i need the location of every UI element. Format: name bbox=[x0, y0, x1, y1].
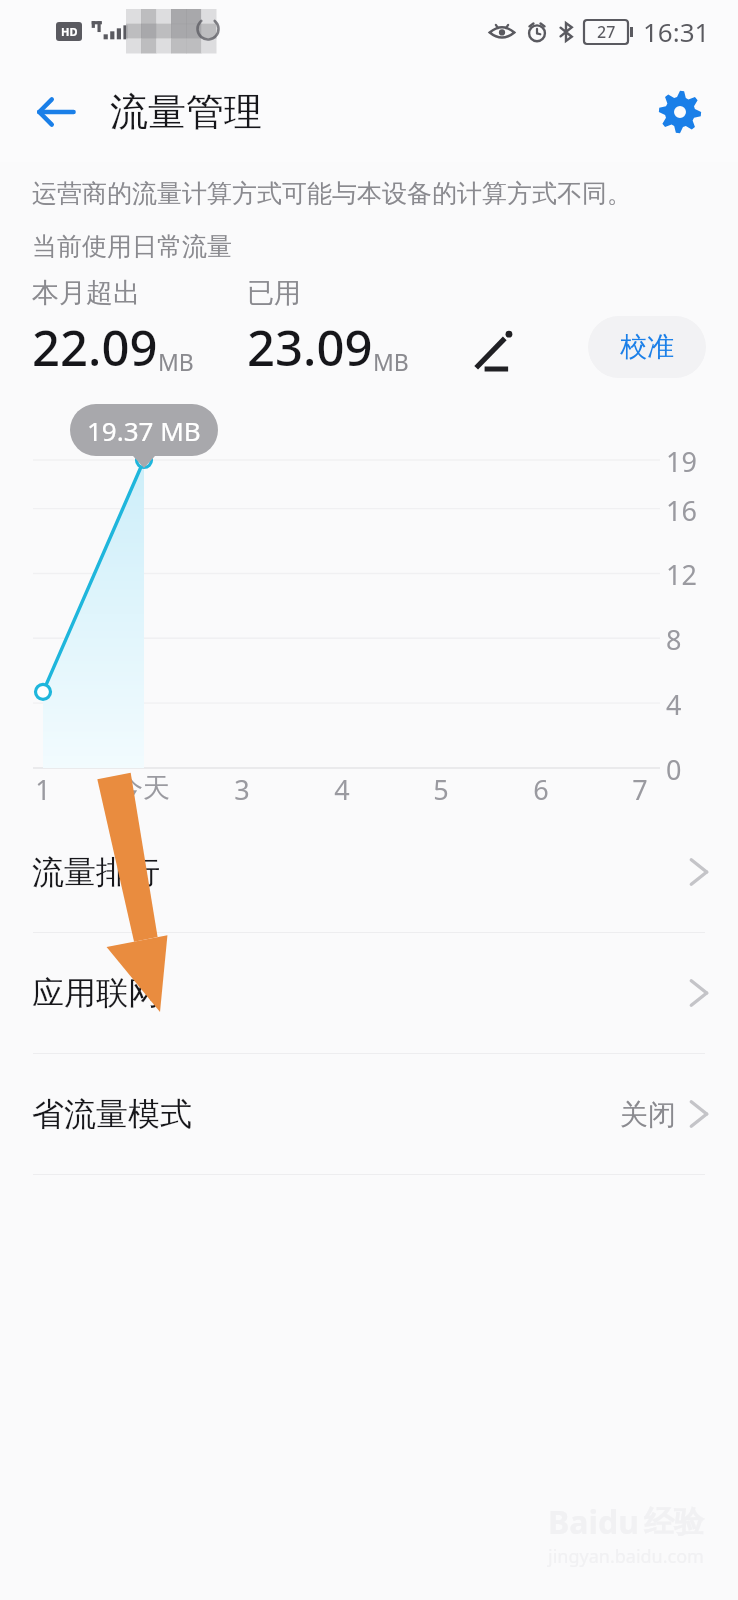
staticText: 流量管理 bbox=[110, 88, 262, 136]
staticText: 校准 bbox=[620, 330, 674, 364]
staticText: 16 bbox=[666, 492, 726, 529]
staticText: 经验 bbox=[644, 1503, 704, 1541]
button[interactable]: 设置 bbox=[644, 76, 716, 148]
staticText: 19 bbox=[666, 443, 726, 480]
staticText: jingyan.baidu.com bbox=[548, 1544, 704, 1569]
staticText: 8 bbox=[666, 621, 726, 658]
staticText: 关闭 bbox=[620, 1097, 676, 1132]
staticText: 应用联网 bbox=[32, 973, 160, 1013]
staticText: 19.37 MB bbox=[87, 413, 201, 448]
staticText: 23.09 bbox=[247, 314, 373, 381]
button[interactable]: 校准 bbox=[588, 316, 706, 378]
staticText: MB bbox=[373, 346, 409, 377]
staticText: 7 bbox=[600, 771, 680, 808]
button[interactable]: 编辑 bbox=[462, 320, 524, 382]
staticText: 运营商的流量计算方式可能与本设备的计算方式不同。 bbox=[32, 178, 632, 209]
staticText: 省流量模式 bbox=[32, 1094, 192, 1134]
staticText: 5 bbox=[401, 771, 481, 808]
staticText: 今天 bbox=[103, 771, 183, 805]
staticText: 当前使用日常流量 bbox=[32, 231, 232, 262]
staticText: 6 bbox=[501, 771, 581, 808]
staticText: 3 bbox=[202, 771, 282, 808]
staticText: 本月超出 bbox=[32, 276, 140, 310]
button[interactable]: 返回 bbox=[20, 76, 92, 148]
staticText: 流量排行 bbox=[32, 852, 160, 892]
staticText: 22.09 bbox=[32, 314, 158, 381]
staticText: 已用 bbox=[247, 276, 301, 310]
staticText: 4 bbox=[666, 686, 726, 723]
staticText: 4 bbox=[302, 771, 382, 808]
staticText: 16:31 bbox=[643, 14, 710, 49]
button[interactable]: 流量排行 bbox=[0, 812, 738, 932]
staticText: MB bbox=[158, 346, 194, 377]
button[interactable]: 省流量模式 bbox=[0, 1054, 738, 1174]
staticText: 12 bbox=[666, 556, 726, 593]
staticText: 1 bbox=[3, 771, 83, 808]
staticText: HD bbox=[61, 24, 78, 39]
staticText: Baidu bbox=[548, 1500, 640, 1544]
button[interactable]: 应用联网 bbox=[0, 933, 738, 1053]
staticText: 0 bbox=[666, 751, 726, 788]
staticText: 27 bbox=[597, 21, 616, 43]
